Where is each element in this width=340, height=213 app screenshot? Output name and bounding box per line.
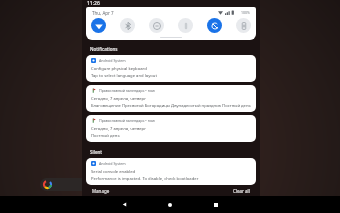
staticText: Notifications xyxy=(90,46,118,52)
button[interactable]: Home xyxy=(156,196,184,213)
staticText: Serial console enabled xyxy=(91,169,136,175)
button[interactable]: Android System xyxy=(86,158,256,185)
button[interactable]: Toggle off xyxy=(120,18,135,33)
staticText: Silent xyxy=(90,149,103,155)
staticText: Android System xyxy=(99,58,126,63)
button[interactable]: Toggle on xyxy=(91,18,106,33)
staticText: Clear all xyxy=(233,188,250,194)
button[interactable]: Clear all xyxy=(231,187,252,195)
staticText: Благовещение Пресвятой Богородицы Двунад… xyxy=(91,103,251,109)
button[interactable]: Toggle off xyxy=(178,18,193,33)
staticText: Performance is impacted. To disable, che… xyxy=(91,176,199,182)
staticText: Configure physical keyboard xyxy=(91,66,147,72)
staticText: Православный календарь • now xyxy=(99,88,155,93)
staticText: Постный день xyxy=(91,133,120,139)
staticText: 100% xyxy=(241,10,250,15)
button[interactable]: Manage xyxy=(90,187,112,195)
staticText: 11:26 xyxy=(87,0,100,7)
staticText: Tap to select language and layout xyxy=(91,73,157,79)
staticText: Сегодня, 7 апреля, четверг xyxy=(91,126,146,132)
staticText: Сегодня, 7 апреля, четверг xyxy=(91,96,146,102)
staticText: Thu, Apr 7 xyxy=(92,10,114,16)
button[interactable]: Православный календарь • now xyxy=(86,85,256,112)
button[interactable]: Recent apps xyxy=(202,196,230,213)
button[interactable]: Google search xyxy=(40,178,135,191)
button[interactable]: Православный календарь • now xyxy=(86,115,256,142)
button[interactable]: Back xyxy=(110,196,138,213)
button[interactable]: Android System xyxy=(86,55,256,82)
staticText: Православный календарь • now xyxy=(99,118,155,123)
staticText: Android System xyxy=(99,161,126,166)
button[interactable]: Toggle off xyxy=(236,18,251,33)
button[interactable]: Toggle on xyxy=(207,18,222,33)
staticText: Manage xyxy=(92,188,110,194)
button[interactable]: Toggle off xyxy=(149,18,164,33)
